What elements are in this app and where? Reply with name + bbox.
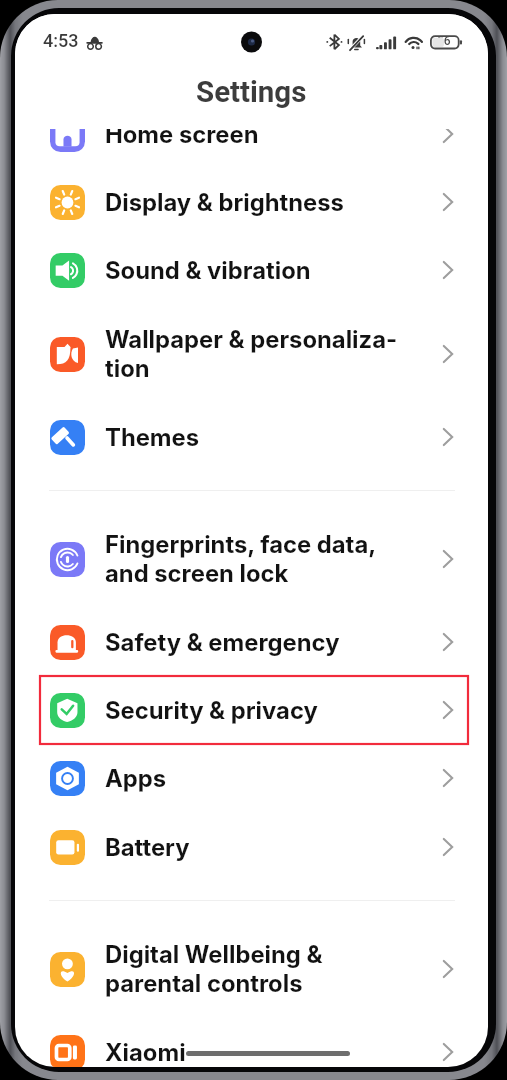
button[interactable]: Home screen <box>15 129 488 168</box>
staticText: Settings <box>196 75 307 110</box>
button[interactable]: Xiaomi <box>15 1018 488 1067</box>
staticText: Themes <box>105 423 200 452</box>
staticText: Digital Wellbeing & <box>105 940 323 969</box>
button[interactable]: Display & brightness <box>15 168 488 236</box>
staticText: Security & privacy <box>105 696 318 725</box>
staticText: Display & brightness <box>105 188 344 217</box>
staticText: parental controls <box>105 969 303 998</box>
staticText: Battery <box>105 833 190 862</box>
button[interactable]: Security & privacy <box>15 676 488 744</box>
button[interactable]: Apps <box>15 744 488 812</box>
staticText: 56 <box>437 34 451 48</box>
staticText: and screen lock <box>105 559 289 588</box>
staticText: Wallpaper & personaliza- <box>105 325 398 354</box>
staticText: Xiaomi <box>105 1038 186 1067</box>
staticText: Sound & vibration <box>105 256 311 285</box>
staticText: Home screen <box>105 129 259 149</box>
staticText: Apps <box>105 764 167 793</box>
staticText: 4:53 <box>43 30 79 51</box>
button[interactable]: Safety & emergency <box>15 608 488 676</box>
button[interactable]: Wallpaper & personaliza- <box>15 305 488 403</box>
button[interactable]: Themes <box>15 403 488 471</box>
button[interactable]: Sound & vibration <box>15 236 488 304</box>
button[interactable]: Battery <box>15 813 488 881</box>
button[interactable]: Fingerprints, face data, <box>15 510 488 608</box>
staticText: Fingerprints, face data, <box>105 530 377 559</box>
staticText: tion <box>105 354 150 383</box>
button[interactable]: Digital Wellbeing & <box>15 920 488 1018</box>
staticText: Safety & emergency <box>105 628 340 657</box>
